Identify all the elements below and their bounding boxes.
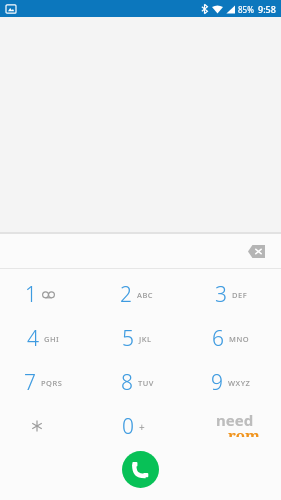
button[interactable]: 4 [0, 316, 93, 360]
staticText: GHI [44, 334, 60, 344]
button[interactable]: 3 [187, 272, 281, 316]
button[interactable]: need [187, 404, 281, 448]
button[interactable]: Call [122, 451, 159, 488]
staticText: 7 [24, 368, 36, 397]
button[interactable]: 2 [93, 272, 187, 316]
staticText: 9 [211, 368, 223, 397]
staticText: + [139, 420, 145, 434]
button[interactable] [0, 404, 93, 448]
button[interactable]: 8 [93, 360, 187, 404]
staticText: need [216, 410, 254, 430]
staticText: 2 [120, 280, 132, 309]
staticText: DEF [232, 290, 248, 300]
staticText: MNO [229, 334, 250, 344]
staticText: ABC [137, 290, 154, 300]
button[interactable]: 0 [93, 404, 187, 448]
staticText: rom [228, 425, 260, 437]
staticText: 0 [122, 412, 134, 441]
button[interactable]: 1 [0, 272, 93, 316]
staticText: PQRS [41, 378, 63, 388]
staticText: 3 [215, 280, 227, 309]
staticText: 85% [238, 4, 254, 15]
staticText: 9:58 [258, 3, 276, 15]
staticText: 1 [25, 280, 37, 309]
staticText: 6 [212, 324, 224, 353]
staticText: 5 [122, 324, 134, 353]
staticText: WXYZ [228, 378, 251, 388]
staticText: 4 [27, 324, 39, 353]
button[interactable]: Backspace [243, 238, 269, 264]
staticText: 8 [121, 368, 133, 397]
staticText: JKL [139, 334, 152, 344]
button[interactable]: 5 [93, 316, 187, 360]
button[interactable]: 9 [187, 360, 281, 404]
button[interactable]: 7 [0, 360, 93, 404]
staticText: TUV [138, 378, 154, 388]
button[interactable]: 6 [187, 316, 281, 360]
